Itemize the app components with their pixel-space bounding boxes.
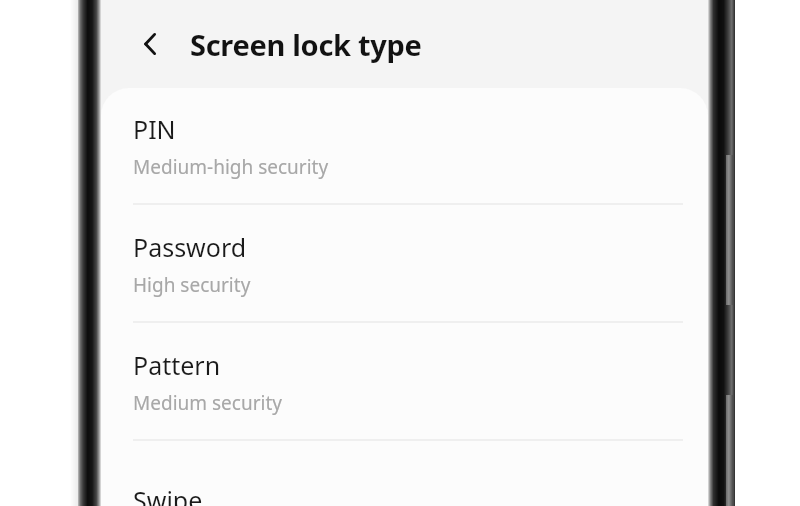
button[interactable]: Back	[129, 22, 173, 66]
staticText: Swipe	[133, 483, 203, 506]
button[interactable]: Pattern	[101, 324, 708, 440]
button[interactable]: Swipe	[101, 442, 708, 506]
button[interactable]: Power button	[726, 395, 733, 506]
staticText: Screen lock type	[190, 25, 422, 64]
button[interactable]: PIN	[101, 88, 708, 204]
staticText: Medium-high security	[133, 154, 329, 180]
staticText: PIN	[133, 112, 176, 146]
button[interactable]: Volume buttons	[726, 155, 733, 305]
staticText: High security	[133, 272, 251, 298]
staticText: Pattern	[133, 348, 221, 382]
staticText: Medium security	[133, 390, 282, 416]
staticText: Password	[133, 230, 247, 264]
button[interactable]: Password	[101, 206, 708, 322]
